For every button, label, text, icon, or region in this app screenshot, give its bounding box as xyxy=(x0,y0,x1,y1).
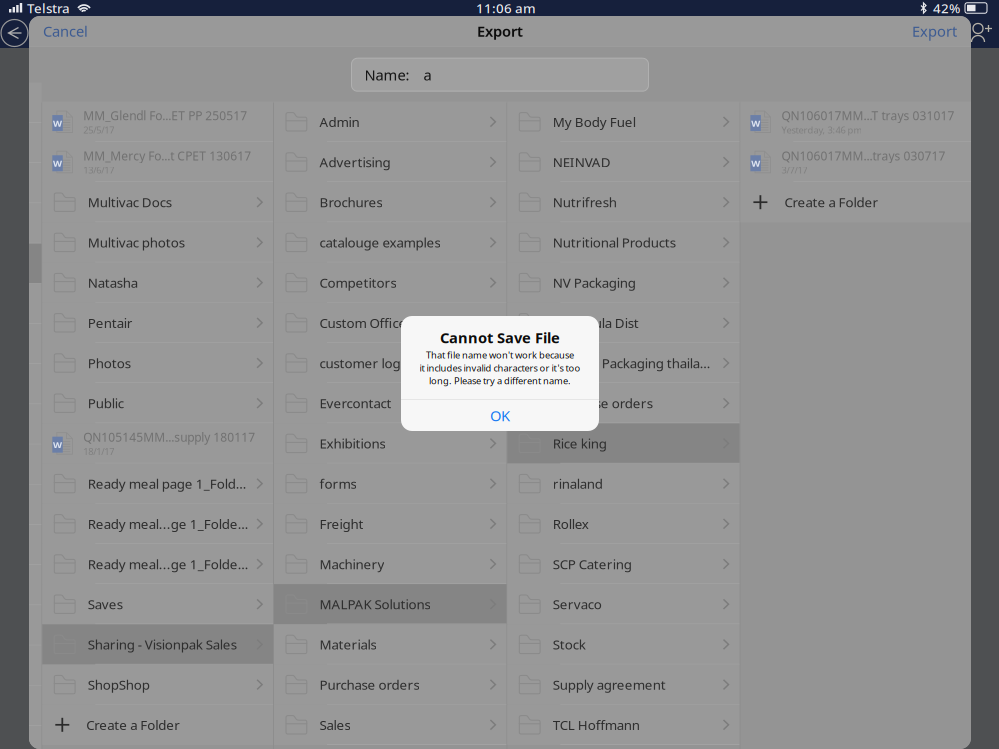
staticText: W xyxy=(53,438,62,451)
button[interactable]: Advertising xyxy=(274,142,507,182)
button[interactable]: NEINVAD xyxy=(507,142,740,182)
staticText: Export xyxy=(912,21,957,41)
staticText: customer logos xyxy=(319,354,414,372)
button[interactable]: Freight xyxy=(274,504,507,544)
staticText: Ready meal page 1_Folder xyxy=(88,475,248,492)
staticText: Rice king xyxy=(553,434,607,452)
button[interactable]: Peninsula Dist xyxy=(507,303,740,343)
button[interactable]: Purchase orders xyxy=(507,383,740,423)
staticText: 42% xyxy=(933,0,960,17)
staticText: Admin xyxy=(319,113,359,131)
staticText: Create a Folder xyxy=(86,716,180,734)
button[interactable]: Multivac photos xyxy=(42,222,273,262)
button[interactable]: Create a Folder xyxy=(42,705,273,745)
button[interactable]: TCL Hoffmann xyxy=(507,705,740,745)
button[interactable]: Nutritional Products xyxy=(507,222,740,262)
staticText: 18/1/17 xyxy=(83,445,114,458)
staticText: NEINVAD xyxy=(553,153,611,171)
staticText: Supply agreement xyxy=(553,676,666,693)
button[interactable]: W xyxy=(740,102,971,142)
staticText: Nutritional Products xyxy=(553,233,676,251)
staticText: Natasha xyxy=(88,274,138,291)
button[interactable]: Exhibitions xyxy=(274,423,507,463)
button[interactable]: catalouge examples xyxy=(274,222,507,262)
staticText: Servaco xyxy=(553,595,602,613)
button[interactable]: Rice king xyxy=(507,423,740,463)
button[interactable]: Materials xyxy=(274,624,507,664)
button[interactable]: Sales xyxy=(274,705,507,745)
button[interactable]: Ready meal...ge 1_Folder 1 xyxy=(42,544,273,584)
button[interactable]: Pentair xyxy=(42,303,273,343)
button[interactable]: Perfect Packaging thailand xyxy=(507,343,740,383)
staticText: Name: xyxy=(364,65,409,84)
button[interactable]: rinaland xyxy=(507,463,740,504)
button[interactable]: MALPAK Solutions xyxy=(274,584,507,624)
button[interactable]: SCP Catering xyxy=(507,544,740,584)
button[interactable]: Purchase orders xyxy=(274,664,507,705)
staticText: Peninsula Dist xyxy=(553,314,639,332)
button[interactable]: Custom Office Templates xyxy=(274,303,507,343)
button[interactable]: Back xyxy=(0,18,29,48)
button[interactable]: Competitors xyxy=(274,262,507,303)
staticText: Materials xyxy=(319,635,376,653)
button[interactable]: Admin xyxy=(274,102,507,142)
staticText: Create a Folder xyxy=(784,193,878,211)
staticText: Advertising xyxy=(319,153,390,171)
button[interactable]: customer logos xyxy=(274,343,507,383)
button[interactable]: Brochures xyxy=(274,182,507,222)
button[interactable]: Photos xyxy=(42,343,273,383)
staticText: Rollex xyxy=(553,515,589,533)
staticText: Cancel xyxy=(43,21,88,41)
staticText: it includes invalid characters or it's t… xyxy=(419,362,580,374)
button[interactable]: W xyxy=(740,142,971,182)
button[interactable]: Create a Folder xyxy=(740,182,971,222)
button[interactable]: Add person xyxy=(966,18,998,50)
staticText: 25/5/17 xyxy=(83,124,114,136)
button[interactable]: Ready meal...ge 1_Folder 0 xyxy=(42,504,273,544)
button[interactable]: Multivac Docs xyxy=(42,182,273,222)
button[interactable]: Machinery xyxy=(274,544,507,584)
staticText: TCL Hoffmann xyxy=(553,716,640,734)
button[interactable]: My Body Fuel xyxy=(507,102,740,142)
button[interactable]: Natasha xyxy=(42,262,273,303)
staticText: MM_Glendl Fo...ET PP 250517 xyxy=(83,108,247,123)
button[interactable]: Ready meal page 1_Folder xyxy=(42,463,273,504)
button[interactable]: Servaco xyxy=(507,584,740,624)
staticText: Cannot Save File xyxy=(440,328,560,347)
button[interactable]: Nutrifresh xyxy=(507,182,740,222)
button[interactable]: Public xyxy=(42,383,273,423)
staticText: Perfect Packaging thailand xyxy=(553,354,715,372)
staticText: That file name won't work because xyxy=(426,349,574,361)
staticText: SCP Catering xyxy=(553,555,632,573)
staticText: Sharing - Visionpak Sales xyxy=(88,635,237,653)
staticText: Nutrifresh xyxy=(553,193,617,211)
button[interactable]: W xyxy=(42,102,273,142)
staticText: rinaland xyxy=(553,475,603,492)
button[interactable]: forms xyxy=(274,463,507,504)
staticText: Purchase orders xyxy=(319,676,419,693)
button[interactable]: Supply agreement xyxy=(507,664,740,705)
staticText: Photos xyxy=(88,354,131,372)
button[interactable]: Export xyxy=(912,16,971,46)
button[interactable]: ShopShop xyxy=(42,664,273,705)
button[interactable]: Cancel xyxy=(29,16,88,46)
button[interactable]: W xyxy=(42,423,273,463)
staticText: forms xyxy=(319,475,356,492)
staticText: Machinery xyxy=(319,555,384,573)
staticText: a xyxy=(423,65,431,84)
button[interactable]: W xyxy=(42,142,273,182)
staticText: Public xyxy=(88,394,124,412)
staticText: W xyxy=(751,117,760,129)
staticText: Ready meal...ge 1_Folder 1 xyxy=(88,555,248,573)
staticText: MALPAK Solutions xyxy=(319,595,430,613)
button[interactable]: NV Packaging xyxy=(507,262,740,303)
staticText: Competitors xyxy=(319,274,396,291)
button[interactable]: Stock xyxy=(507,624,740,664)
staticText: Freight xyxy=(319,515,363,533)
button[interactable]: Rollex xyxy=(507,504,740,544)
button[interactable]: Saves xyxy=(42,584,273,624)
staticText: 11:06 am xyxy=(476,0,536,17)
button[interactable]: Evercontact xyxy=(274,383,507,423)
button[interactable]: OK xyxy=(401,400,599,431)
button[interactable]: Sharing - Visionpak Sales xyxy=(42,624,273,664)
